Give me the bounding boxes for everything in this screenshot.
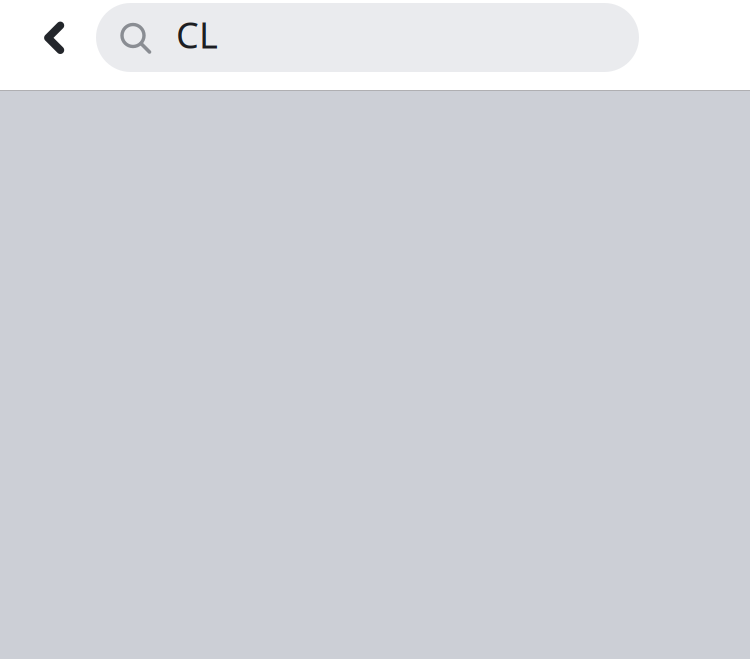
staticText: CL bbox=[176, 11, 218, 58]
button[interactable]: Back bbox=[0, 0, 96, 76]
button[interactable]: CL bbox=[96, 3, 639, 72]
